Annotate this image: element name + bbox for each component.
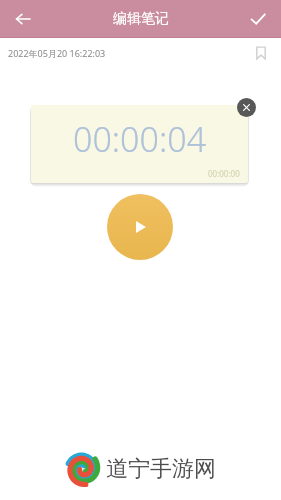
staticText: 编辑笔记 [113,10,169,28]
button[interactable]: Bookmark [249,41,273,65]
button[interactable]: 00:00:04 [31,105,248,183]
staticText: 道宁手游网 [106,455,216,483]
button[interactable]: Start timer [107,194,173,260]
button[interactable]: Save [241,2,275,36]
staticText: 2022年05月20 16:22:03 [8,47,106,59]
button[interactable]: Back [6,2,40,36]
staticText: 00:00:04 [73,116,207,162]
button[interactable]: Remove timer [237,98,256,117]
staticText: 00:00:00 [208,168,240,179]
